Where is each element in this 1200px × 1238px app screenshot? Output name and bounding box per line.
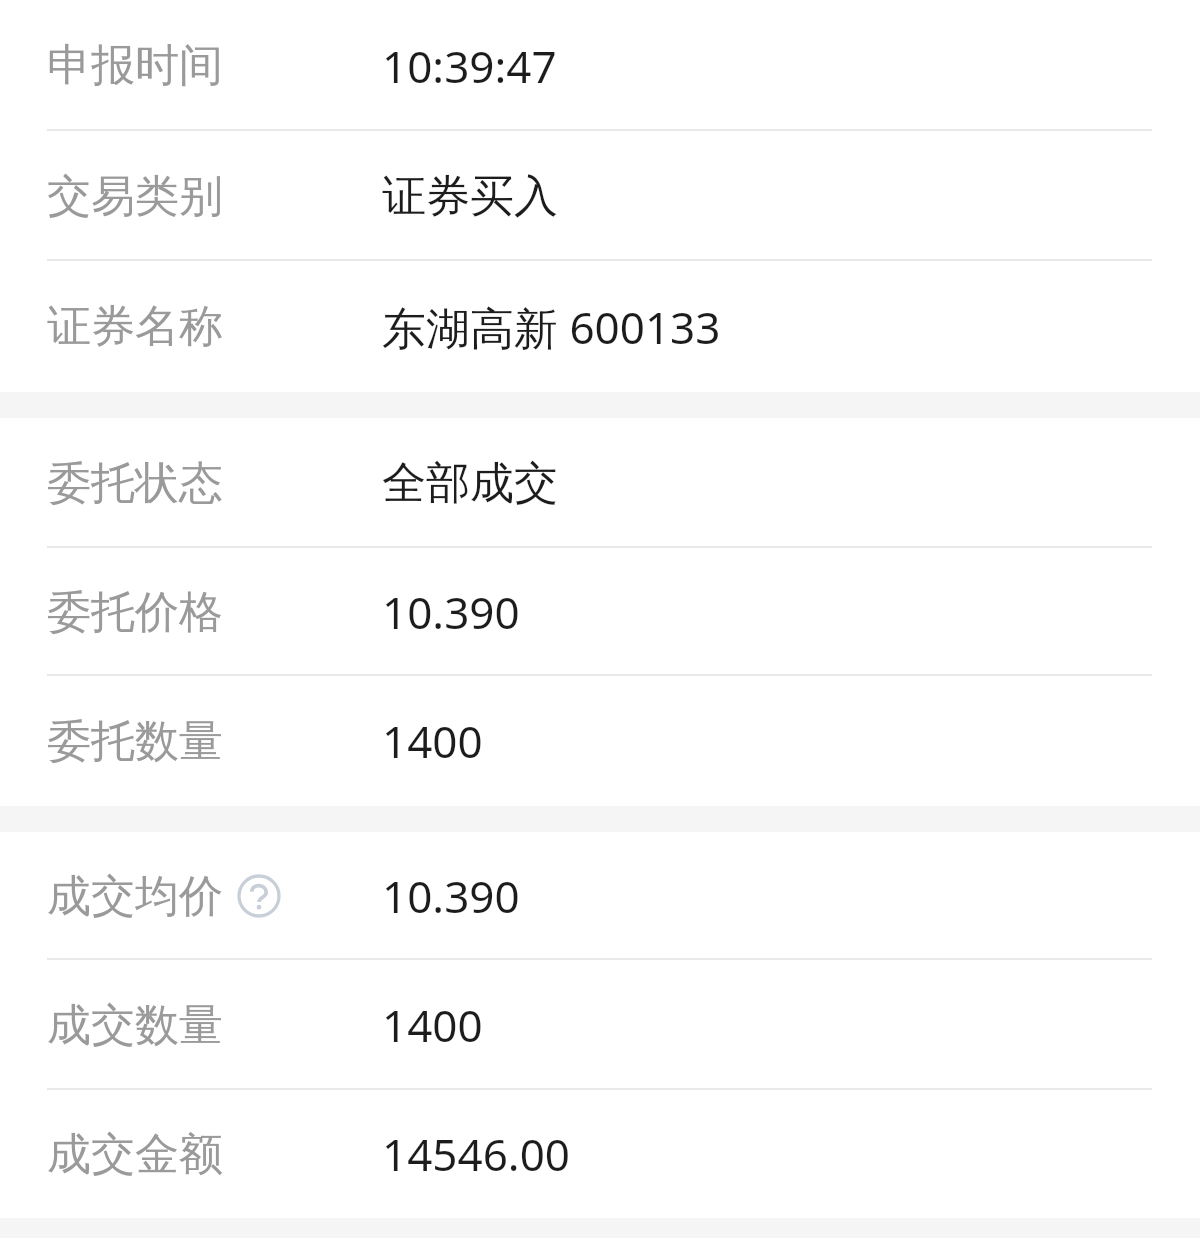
staticText: 申报时间 (47, 38, 223, 93)
staticText: 证券买入 (382, 169, 558, 224)
staticText: 10.390 (382, 866, 520, 926)
staticText: 成交均价 (47, 869, 223, 924)
staticText: 全部成交 (382, 456, 558, 511)
button[interactable]: 成交数量 (0, 960, 1200, 1090)
staticText: 委托数量 (47, 714, 223, 769)
button[interactable]: 证券名称 (0, 261, 1200, 392)
staticText: 10:39:47 (382, 36, 557, 96)
staticText: 证券名称 (47, 299, 223, 354)
staticText: 委托状态 (47, 456, 223, 511)
staticText: 交易类别 (47, 169, 223, 224)
button[interactable]: 申报时间 (0, 0, 1200, 131)
button[interactable]: 委托价格 (0, 548, 1200, 676)
button[interactable]: 委托数量 (0, 676, 1200, 806)
staticText: 10.390 (382, 582, 520, 642)
staticText: 14546.00 (382, 1124, 570, 1184)
staticText: 1400 (382, 711, 483, 771)
button[interactable]: 交易类别 (0, 131, 1200, 261)
button[interactable]: Help about average price (237, 874, 281, 918)
button[interactable]: 成交金额 (0, 1090, 1200, 1218)
staticText: 东湖高新 600133 (382, 297, 721, 357)
staticText: 1400 (382, 995, 483, 1055)
staticText: 成交金额 (47, 1127, 223, 1182)
button[interactable]: 成交均价 (0, 832, 1200, 960)
staticText: 成交数量 (47, 998, 223, 1053)
staticText: 委托价格 (47, 585, 223, 640)
button[interactable]: 委托状态 (0, 418, 1200, 548)
